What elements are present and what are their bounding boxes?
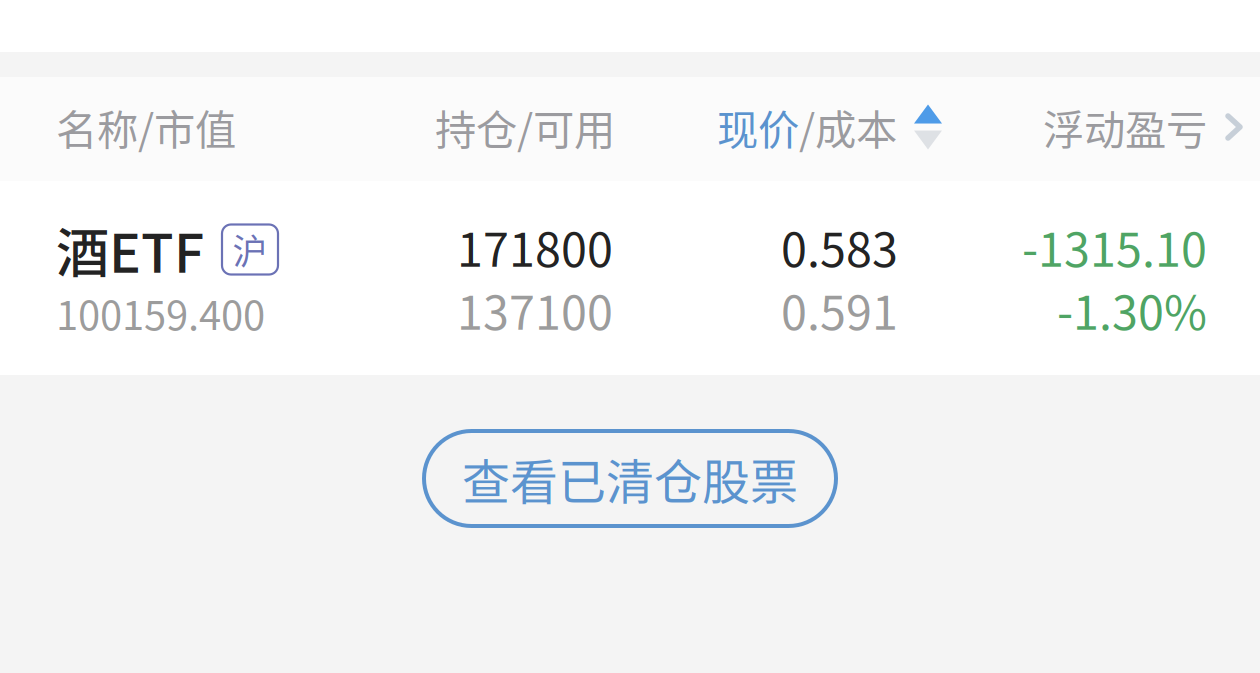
staticText: 沪 <box>232 224 267 275</box>
button[interactable]: 查看已清仓股票 <box>424 431 836 526</box>
button[interactable]: 现价 <box>615 75 942 179</box>
staticText: 查看已清仓股票 <box>462 444 798 513</box>
button[interactable]: 名称/市值 <box>56 75 440 179</box>
staticText: 现价 <box>717 97 799 157</box>
staticText: 137100 <box>457 276 613 343</box>
button[interactable]: 酒ETF <box>0 181 1260 375</box>
staticText: 0.591 <box>781 276 898 343</box>
button[interactable]: 浮动盈亏 <box>942 75 1244 179</box>
staticText: 0.583 <box>781 213 898 280</box>
button[interactable]: 持仓/可用 <box>440 75 615 179</box>
staticText: 100159.400 <box>56 283 265 341</box>
staticText: -1315.10 <box>1022 213 1207 280</box>
staticText: 171800 <box>457 213 613 280</box>
staticText: 名称/市值 <box>56 97 236 157</box>
staticText: -1.30% <box>1057 276 1207 343</box>
staticText: 浮动盈亏 <box>1043 97 1207 157</box>
staticText: 持仓/可用 <box>435 97 615 157</box>
staticText: 酒ETF <box>56 211 204 288</box>
staticText: /成本 <box>799 97 897 157</box>
